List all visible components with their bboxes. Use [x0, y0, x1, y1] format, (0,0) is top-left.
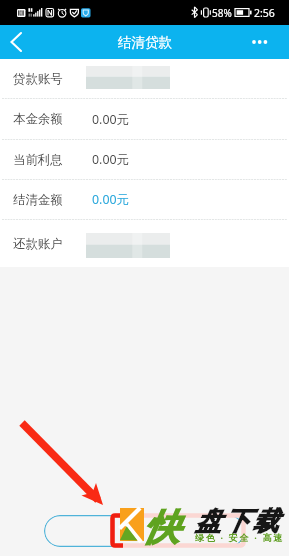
- staticText: 0.00元: [92, 111, 129, 128]
- staticText: 58%: [212, 6, 232, 20]
- button[interactable]: 结清金额: [0, 180, 289, 219]
- button[interactable]: [44, 515, 245, 547]
- staticText: 本金余额: [13, 111, 63, 127]
- staticText: 0.00元: [92, 151, 129, 168]
- button[interactable]: Back: [0, 25, 36, 59]
- button[interactable]: 当前利息: [0, 140, 289, 179]
- staticText: 还款账户: [13, 236, 63, 252]
- staticText: 贷款账号: [13, 71, 63, 87]
- button[interactable]: 还款账户: [0, 220, 289, 267]
- staticText: 当前利息: [13, 152, 63, 168]
- staticText: 0.00元: [92, 191, 129, 208]
- button[interactable]: More options: [245, 25, 289, 59]
- button[interactable]: 贷款账号: [0, 59, 289, 98]
- staticText: 快: [143, 505, 179, 550]
- button[interactable]: 本金余额: [0, 99, 289, 139]
- staticText: 结清金额: [13, 192, 63, 208]
- staticText: 结清贷款: [118, 34, 172, 51]
- staticText: 盘下载: [195, 505, 281, 538]
- staticText: 2:56: [254, 6, 275, 20]
- staticText: 绿色 · 安全 · 高速: [195, 531, 284, 543]
